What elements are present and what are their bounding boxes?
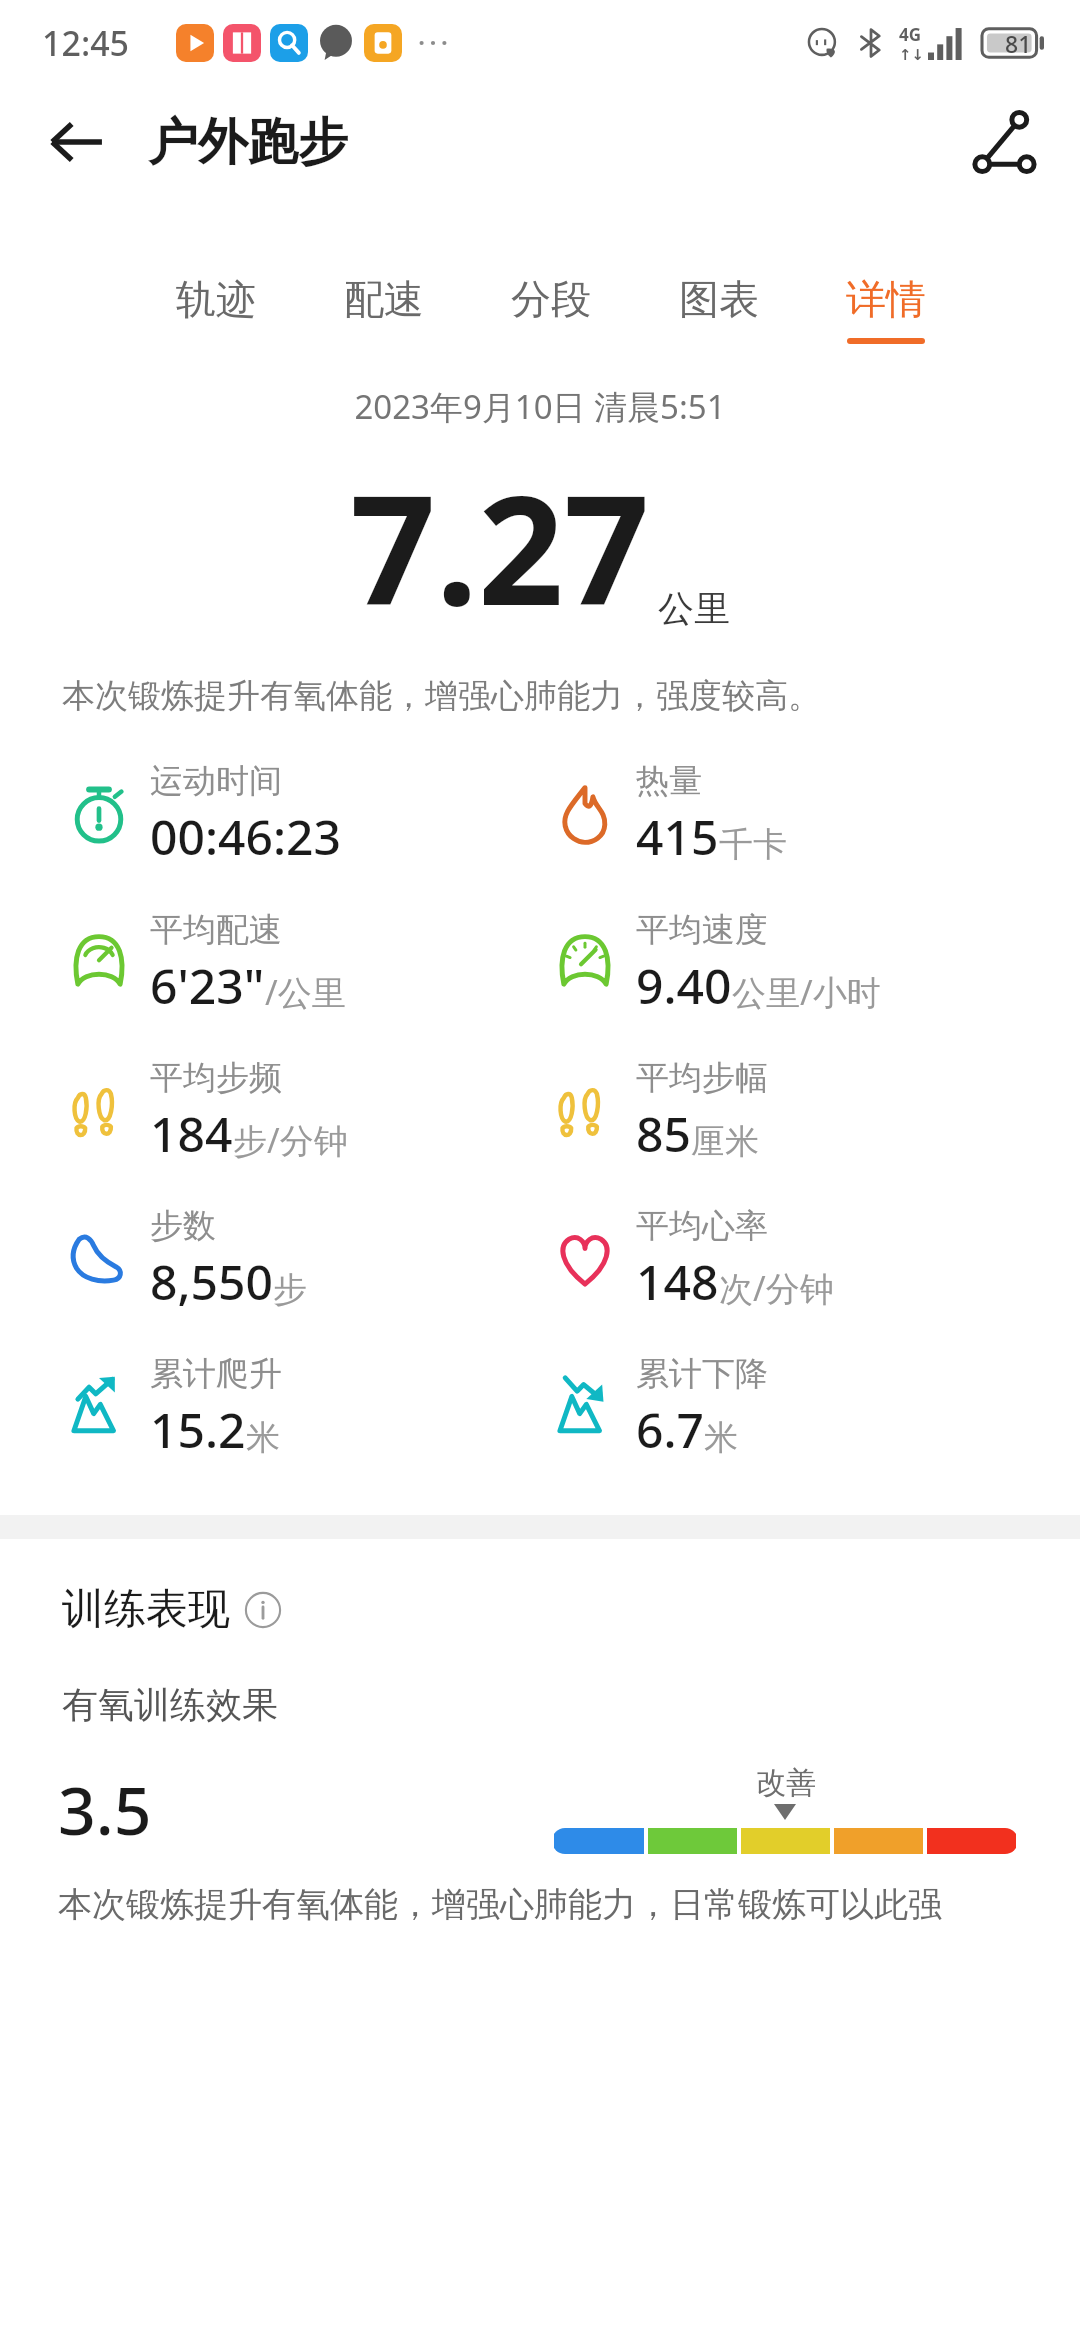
button[interactable]: 平均心率 [552,1185,1080,1333]
button[interactable]: Share [966,105,1040,179]
staticText: 6'23" [150,953,265,1018]
staticText: 平均心率 [636,1205,768,1247]
button[interactable]: 累计爬升 [66,1333,540,1481]
staticText: 步 [273,1268,307,1311]
other: Info [244,1591,282,1629]
button[interactable]: 运动时间 [66,739,540,889]
button[interactable]: Back [40,106,112,178]
staticText: 本次锻炼提升有氧体能，增强心肺能力，日常锻炼可以此强 [58,1883,942,1926]
button[interactable]: 平均配速 [66,889,540,1037]
staticText: 轨迹 [176,274,256,324]
staticText: ↑↓ [899,46,925,63]
staticText: 平均步幅 [636,1057,768,1099]
staticText: 户外跑步 [148,111,348,174]
staticText: 9.40 [636,953,732,1018]
staticText: 公里 [658,586,730,631]
staticText: 平均步频 [150,1057,282,1099]
staticText: 415 [636,804,719,869]
staticText: 8,550 [150,1249,273,1314]
staticText: 运动时间 [150,760,282,802]
staticText: 平均配速 [150,909,282,951]
staticText: 累计爬升 [150,1353,282,1395]
button[interactable]: 平均步频 [66,1037,540,1185]
button[interactable]: 热量 [552,739,1080,889]
button[interactable]: 平均步幅 [552,1037,1080,1185]
staticText: 公里/小时 [732,969,881,1015]
staticText: 累计下降 [636,1353,768,1395]
staticText: 详情 [846,274,926,324]
button[interactable]: 轨迹 [172,274,260,344]
button[interactable]: 累计下降 [552,1333,1080,1481]
staticText: 平均速度 [636,909,768,951]
staticText: 改善 [756,1764,816,1802]
staticText: 12:45 [42,20,130,66]
staticText: 3.5 [58,1764,152,1854]
staticText: 184 [150,1101,233,1166]
staticText: 7.27 [350,445,650,649]
button[interactable]: 平均速度 [552,889,1080,1037]
staticText: 步/分钟 [233,1117,348,1163]
staticText: 次/分钟 [719,1265,834,1311]
staticText: 00:46:23 [150,804,341,869]
staticText: 训练表现 [62,1583,230,1636]
staticText: 2023年9月10日 清晨5:51 [0,384,1080,429]
staticText: 81 [1005,28,1032,59]
staticText: 有氧训练效果 [62,1682,278,1727]
staticText: 图表 [679,274,759,324]
button[interactable]: 图表 [675,274,763,344]
staticText: 千卡 [719,823,787,866]
staticText: 148 [636,1249,719,1314]
staticText: /公里 [265,969,346,1015]
staticText: 步数 [150,1205,216,1247]
staticText: 分段 [511,274,591,324]
button[interactable]: 详情 [842,274,930,344]
staticText: 热量 [636,760,702,802]
staticText: 4G [899,23,922,46]
button[interactable]: 配速 [340,274,428,344]
button[interactable]: 分段 [507,274,595,344]
staticText: 15.2 [150,1397,246,1462]
button[interactable]: 训练表现 [62,1583,282,1636]
staticText: 配速 [344,274,424,324]
staticText: 6.7 [636,1397,704,1462]
staticText: 85 [636,1101,691,1166]
staticText: 本次锻炼提升有氧体能，增强心肺能力，强度较高。 [62,675,1024,717]
staticText: 米 [246,1416,280,1459]
staticText: 米 [704,1416,738,1459]
staticText: 厘米 [691,1120,759,1163]
button[interactable]: 步数 [66,1185,540,1333]
